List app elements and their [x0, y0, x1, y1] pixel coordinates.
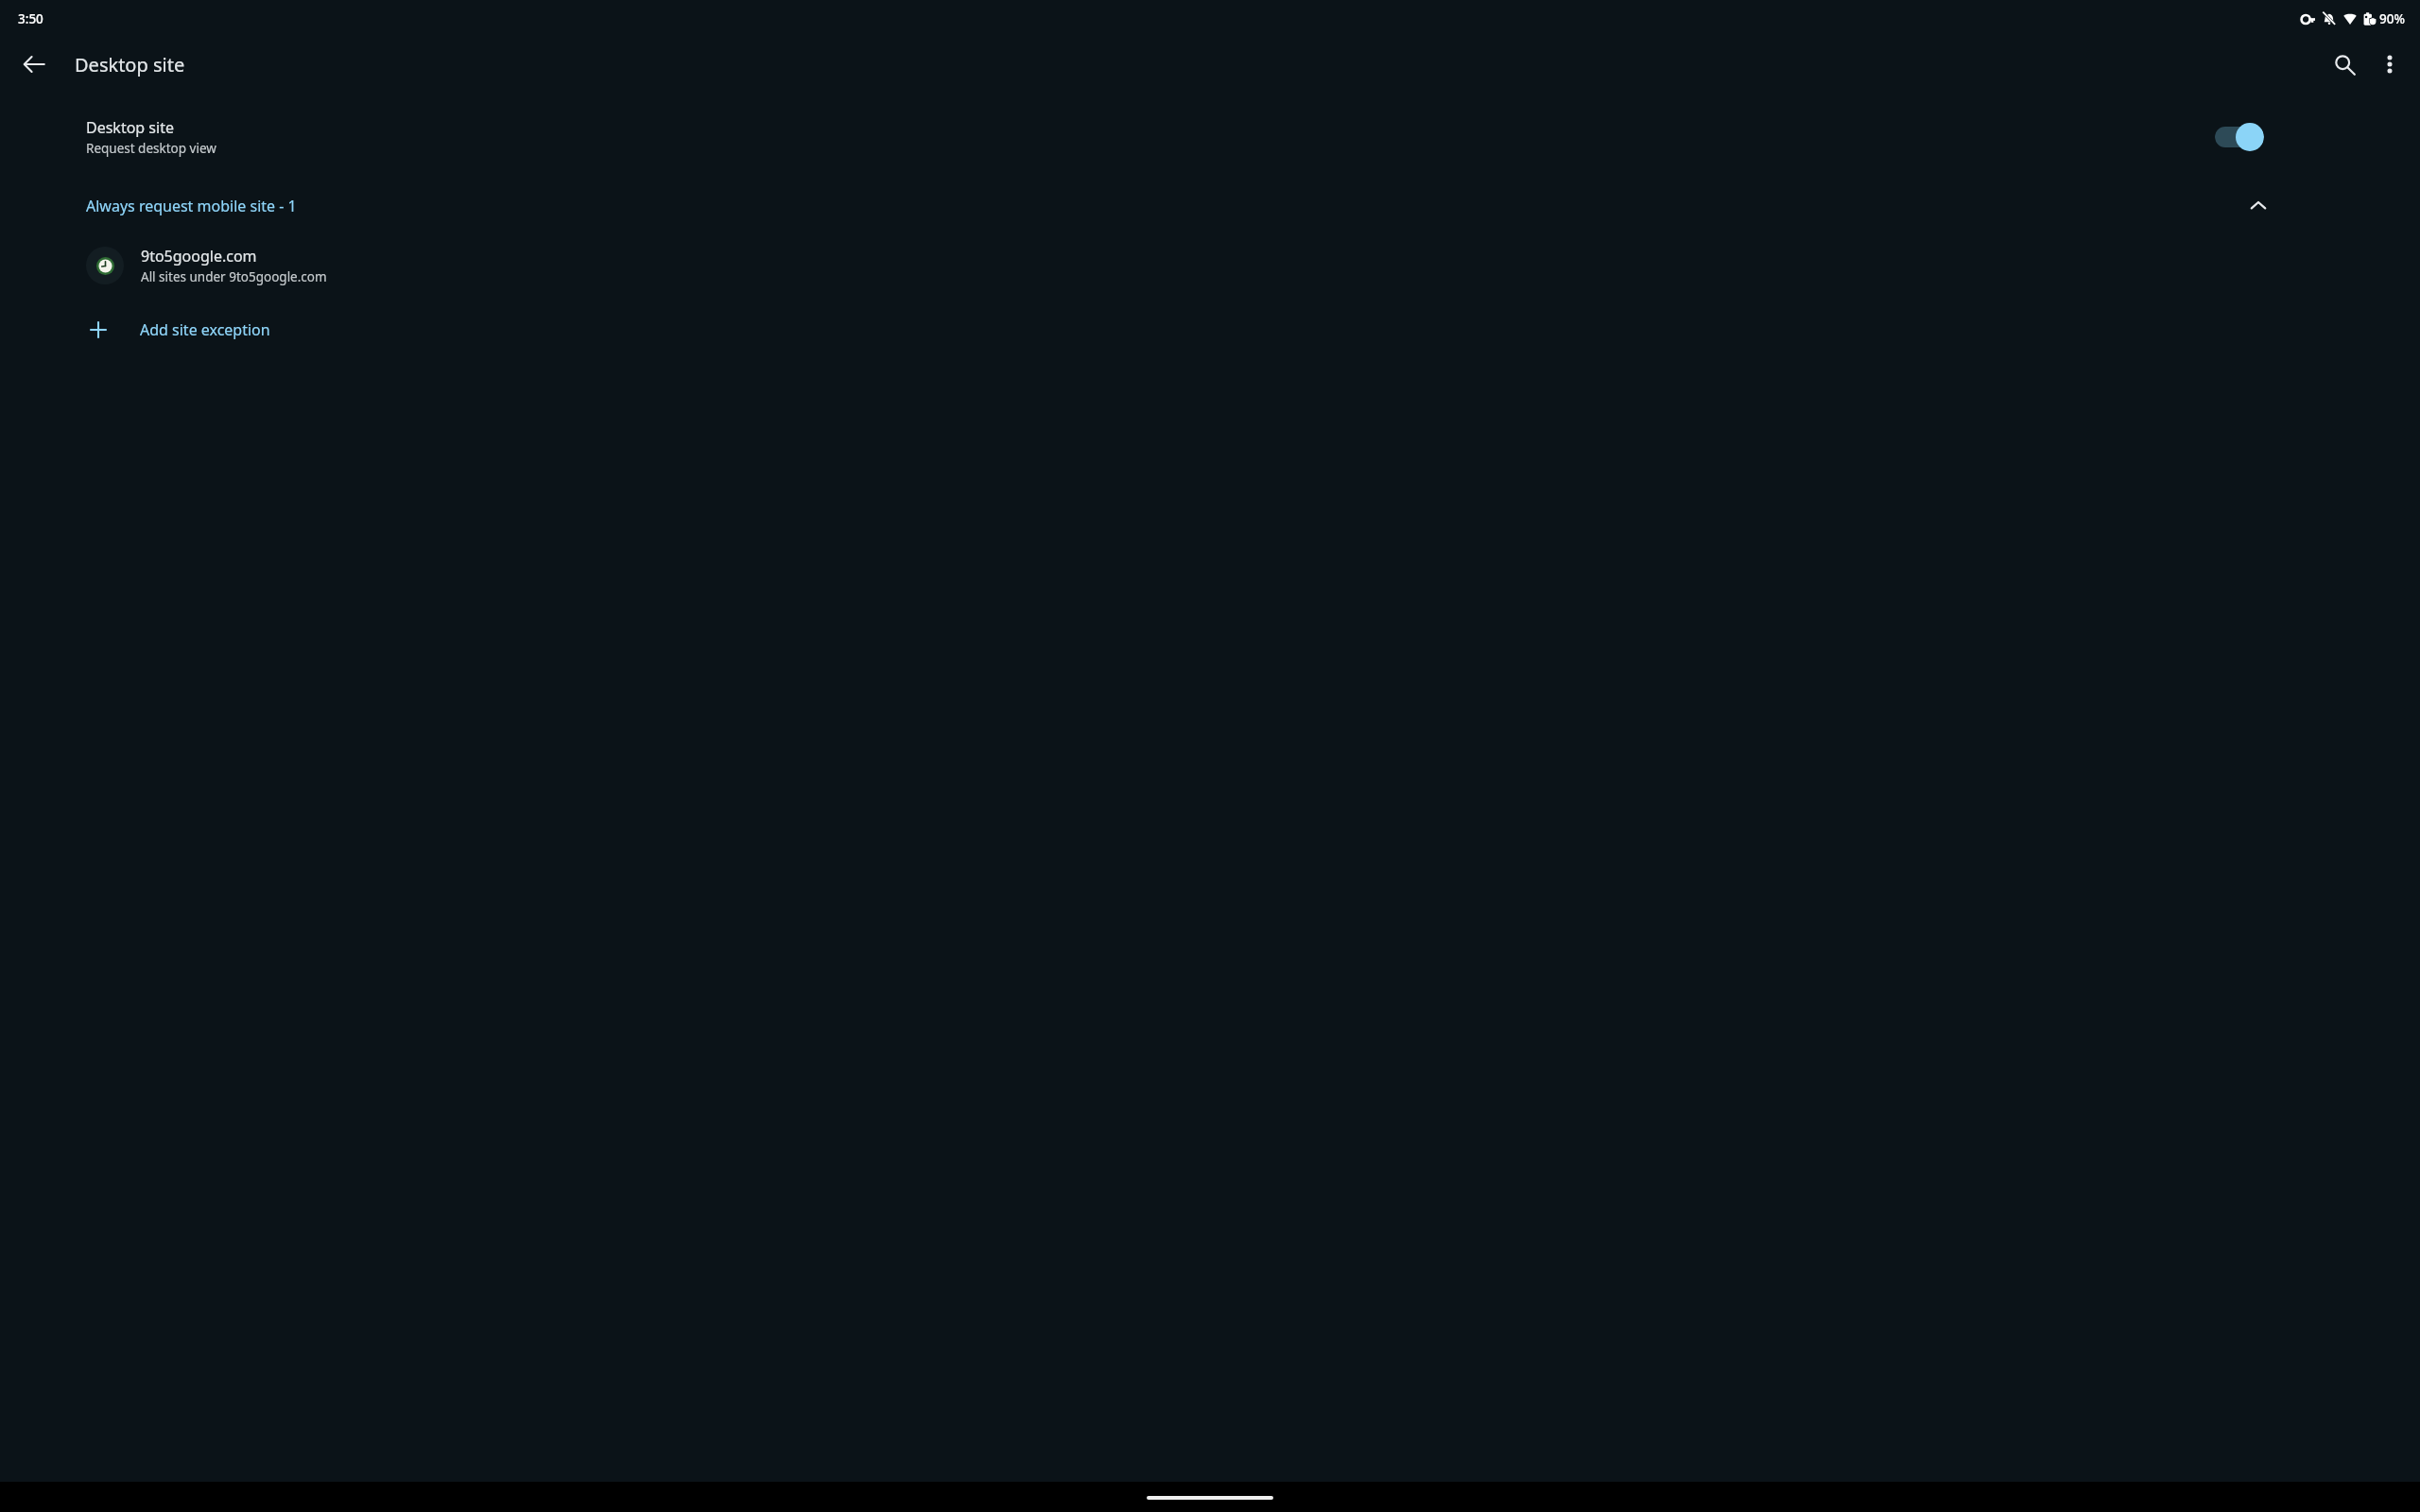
staticText: 9to5google.com — [141, 246, 257, 266]
staticText: 90% — [2379, 10, 2405, 27]
button[interactable]: Search — [2322, 42, 2367, 87]
staticText: Add site exception — [140, 319, 270, 340]
button[interactable]: 9to5google.com — [0, 240, 2420, 291]
button[interactable]: Always request mobile site - 1 — [0, 187, 2420, 225]
button[interactable]: Back — [11, 42, 57, 87]
staticText: Request desktop view — [86, 140, 216, 157]
button[interactable]: Desktop site toggle — [2215, 121, 2264, 153]
button[interactable]: Desktop site — [0, 108, 2420, 166]
staticText: Desktop site — [86, 117, 174, 138]
button[interactable]: More options — [2367, 42, 2412, 87]
staticText: 3:50 — [18, 10, 43, 27]
staticText: All sites under 9to5google.com — [141, 268, 327, 285]
button[interactable]: Add site exception — [0, 310, 2420, 350]
staticText: Desktop site — [75, 52, 185, 77]
staticText: Always request mobile site - 1 — [86, 196, 2245, 216]
